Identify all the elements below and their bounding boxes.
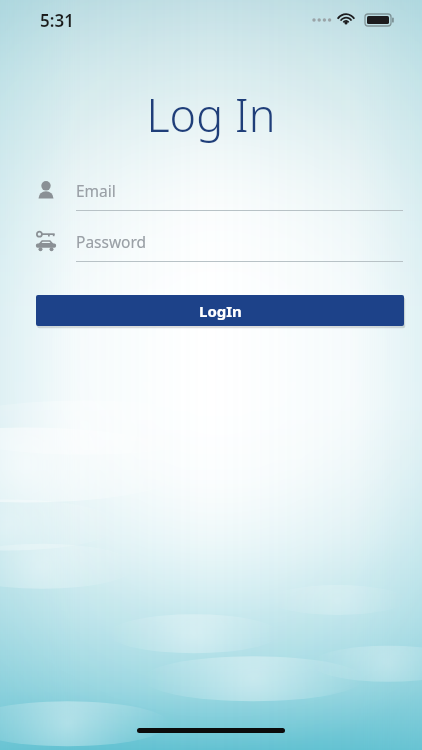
staticText: Email	[76, 180, 116, 201]
button[interactable]: LogIn	[36, 295, 404, 326]
staticText: Password	[76, 231, 147, 252]
staticText: 5:31	[40, 9, 74, 32]
other: Password	[34, 229, 58, 253]
staticText: Log In	[0, 84, 422, 145]
button[interactable]: Email account	[0, 170, 422, 211]
staticText: LogIn	[199, 301, 242, 321]
other: Email account	[34, 178, 58, 202]
button[interactable]: Password	[0, 221, 422, 262]
